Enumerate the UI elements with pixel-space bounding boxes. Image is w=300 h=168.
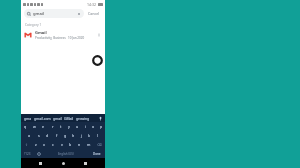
staticText: Done xyxy=(93,152,101,156)
staticText: Productivity, Business xyxy=(35,36,66,40)
staticText: l xyxy=(97,133,98,138)
button[interactable]: English (US) xyxy=(45,151,87,156)
button[interactable]: k xyxy=(85,131,93,140)
button[interactable]: i xyxy=(81,122,89,131)
button[interactable]: w xyxy=(30,122,39,131)
button[interactable]: Back xyxy=(37,160,44,167)
button[interactable]: ?123 xyxy=(21,149,33,158)
button[interactable]: n xyxy=(75,140,84,149)
button[interactable]: Backspace xyxy=(93,140,105,149)
button[interactable]: y xyxy=(65,122,73,131)
button[interactable]: q xyxy=(21,122,30,131)
staticText: Cancel xyxy=(88,11,100,16)
staticText: m xyxy=(87,142,91,147)
button[interactable]: t xyxy=(57,122,65,131)
button[interactable]: b xyxy=(66,140,75,149)
staticText: v xyxy=(61,142,63,147)
button[interactable]: p xyxy=(97,122,105,131)
staticText: growing xyxy=(76,116,90,121)
staticText: d xyxy=(46,133,49,138)
staticText: i xyxy=(85,124,86,129)
staticText: x xyxy=(43,142,45,147)
button[interactable]: Done xyxy=(88,149,105,158)
staticText: u xyxy=(76,124,79,129)
button[interactable]: Voice input xyxy=(98,116,103,121)
button[interactable]: s xyxy=(34,131,43,140)
staticText: p xyxy=(100,124,103,129)
staticText: 10 Jan 2020 xyxy=(68,36,85,40)
button[interactable]: Shift xyxy=(21,140,32,149)
button[interactable]: Cancel xyxy=(86,10,102,17)
staticText: n xyxy=(78,142,81,147)
staticText: w xyxy=(33,124,36,129)
button[interactable]: Emoji xyxy=(33,149,44,158)
staticText: r xyxy=(52,124,54,129)
button[interactable]: gmail xyxy=(52,116,63,121)
staticText: y xyxy=(68,124,70,129)
button[interactable]: a xyxy=(25,131,34,140)
button[interactable]: c xyxy=(48,140,57,149)
staticText: h xyxy=(72,133,75,138)
button[interactable]: Recent apps xyxy=(82,160,89,167)
button[interactable]: Home xyxy=(60,160,67,167)
staticText: j xyxy=(81,133,82,138)
button[interactable]: Clear search xyxy=(77,12,81,16)
button[interactable]: z xyxy=(32,140,40,149)
button[interactable]: j xyxy=(77,131,85,140)
staticText: z xyxy=(35,142,37,147)
staticText: gmail xyxy=(33,11,45,17)
button[interactable]: d xyxy=(43,131,52,140)
button[interactable]: gma xyxy=(23,116,33,121)
button[interactable]: x xyxy=(40,140,48,149)
staticText: English (US) xyxy=(58,152,74,156)
staticText: g xyxy=(64,133,67,138)
button[interactable]: e xyxy=(39,122,48,131)
staticText: t xyxy=(60,124,62,129)
button[interactable]: Gmail xyxy=(21,28,105,41)
staticText: s xyxy=(38,133,40,138)
button[interactable]: r xyxy=(48,122,57,131)
button[interactable]: gmail xyxy=(24,9,84,18)
button[interactable]: gmail.com xyxy=(33,116,52,121)
button[interactable]: More options xyxy=(96,32,102,38)
button[interactable]: v xyxy=(57,140,66,149)
staticText: ?123 xyxy=(24,152,31,156)
staticText: Gmail xyxy=(35,30,47,35)
button[interactable]: l xyxy=(93,131,101,140)
button[interactable]: u xyxy=(73,122,81,131)
staticText: f xyxy=(56,133,58,138)
staticText: c xyxy=(52,142,54,147)
staticText: e xyxy=(42,124,45,129)
button[interactable]: GMail xyxy=(63,116,75,121)
staticText: GMail xyxy=(64,116,74,121)
staticText: gma xyxy=(24,116,32,121)
staticText: gmail.com xyxy=(34,116,51,121)
staticText: ⌫ xyxy=(97,143,102,147)
staticText: b xyxy=(69,142,72,147)
staticText: 14:32 xyxy=(87,2,96,7)
staticText: a xyxy=(28,133,31,138)
button[interactable]: h xyxy=(69,131,77,140)
staticText: k xyxy=(88,133,90,138)
button[interactable]: o xyxy=(89,122,97,131)
button[interactable]: m xyxy=(84,140,93,149)
staticText: Category 1 xyxy=(25,23,42,27)
button[interactable]: f xyxy=(52,131,61,140)
staticText: o xyxy=(92,124,95,129)
button[interactable]: growing xyxy=(75,116,91,121)
staticText: q xyxy=(24,124,27,129)
staticText: ⇧ xyxy=(25,143,28,147)
button[interactable]: g xyxy=(61,131,69,140)
staticText: gmail xyxy=(53,116,62,121)
